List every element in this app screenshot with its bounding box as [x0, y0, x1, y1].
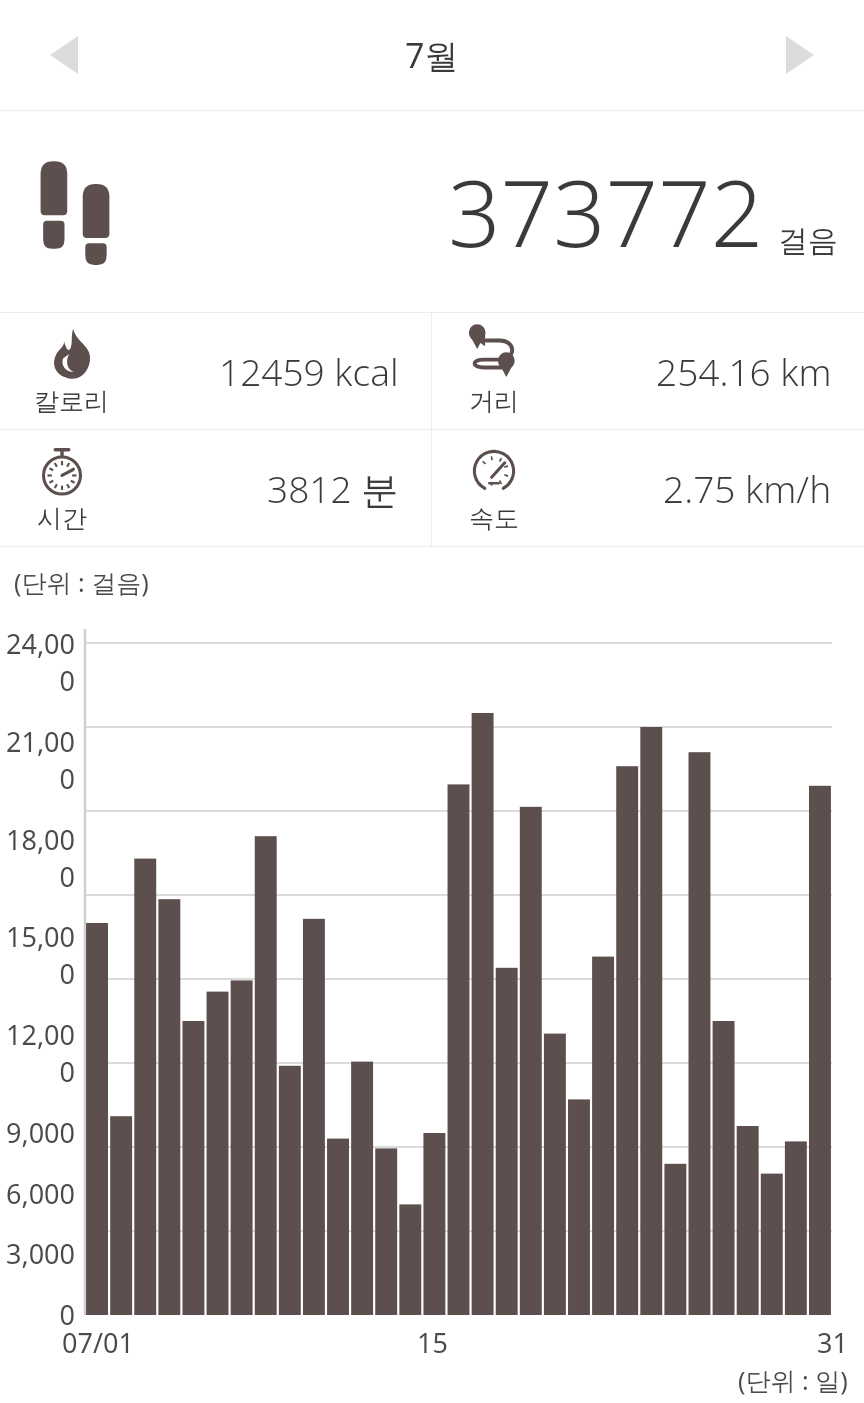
staticText: 9,000 — [5, 1114, 75, 1151]
staticText: 07/01 — [62, 1324, 134, 1361]
button[interactable]: 속도 — [432, 430, 864, 546]
staticText: 0 — [59, 1296, 75, 1333]
staticText: 칼로리 — [34, 386, 109, 417]
staticText: 7월 — [405, 32, 459, 78]
staticText: 24,000 — [0, 625, 75, 699]
button[interactable]: 373772 — [0, 111, 864, 312]
staticText: 18,000 — [0, 821, 75, 895]
staticText: (단위 : 일) — [738, 1363, 848, 1397]
staticText: 254.16 km — [656, 346, 832, 396]
staticText: 373772 — [448, 149, 764, 274]
staticText: 21,000 — [0, 723, 75, 797]
staticText: 15,000 — [0, 918, 75, 992]
staticText: 속도 — [469, 503, 519, 534]
staticText: 12,000 — [0, 1016, 75, 1090]
staticText: 거리 — [469, 386, 519, 417]
staticText: 걸음 — [778, 222, 838, 260]
staticText: (단위 : 걸음) — [14, 565, 149, 599]
button[interactable]: 거리 — [432, 313, 864, 429]
button[interactable]: 칼로리 — [0, 313, 431, 429]
staticText: 6,000 — [5, 1175, 75, 1212]
staticText: 3,000 — [5, 1235, 75, 1272]
staticText: 3812 분 — [267, 463, 399, 514]
staticText: 2.75 km/h — [663, 463, 832, 513]
staticText: 15 — [417, 1324, 448, 1361]
staticText: 12459 kcal — [219, 346, 399, 396]
button[interactable]: Previous month — [22, 19, 106, 91]
button[interactable]: Next month — [758, 19, 842, 91]
staticText: 시간 — [37, 503, 87, 534]
button[interactable]: 시간 — [0, 430, 431, 546]
staticText: 31 — [817, 1324, 848, 1361]
